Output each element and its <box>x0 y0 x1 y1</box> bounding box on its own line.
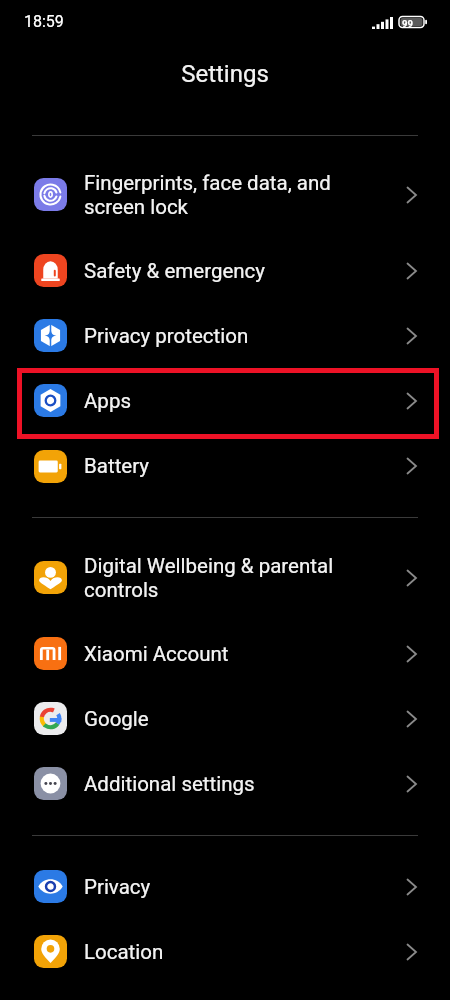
staticText: Apps <box>84 389 339 413</box>
button[interactable]: Google <box>0 686 450 751</box>
staticText: Digital Wellbeing & parental controls <box>84 554 339 602</box>
button[interactable]: Safety & emergency <box>0 238 450 303</box>
staticText: Additional settings <box>84 772 339 796</box>
button[interactable]: Digital Wellbeing & parental controls <box>0 534 450 621</box>
staticText: Battery <box>84 454 339 478</box>
staticText: Location <box>84 940 339 964</box>
staticText: Settings <box>181 60 269 88</box>
staticText: Xiaomi Account <box>84 642 339 666</box>
button[interactable]: Location <box>0 919 450 984</box>
staticText: Privacy protection <box>84 324 339 348</box>
staticText: Google <box>84 707 339 731</box>
button[interactable]: Fingerprints, face data, and screen lock <box>0 151 450 238</box>
button[interactable]: Privacy protection <box>0 303 450 368</box>
staticText: Safety & emergency <box>84 259 339 283</box>
staticText: Privacy <box>84 875 339 899</box>
button[interactable]: Xiaomi Account <box>0 621 450 686</box>
staticText: 18:59 <box>24 12 64 31</box>
button[interactable]: Privacy <box>0 854 450 919</box>
staticText: Fingerprints, face data, and screen lock <box>84 171 339 219</box>
button[interactable]: Additional settings <box>0 751 450 816</box>
button[interactable]: Apps <box>0 368 450 433</box>
staticText: 99 <box>402 18 413 29</box>
button[interactable]: Battery <box>0 433 450 499</box>
